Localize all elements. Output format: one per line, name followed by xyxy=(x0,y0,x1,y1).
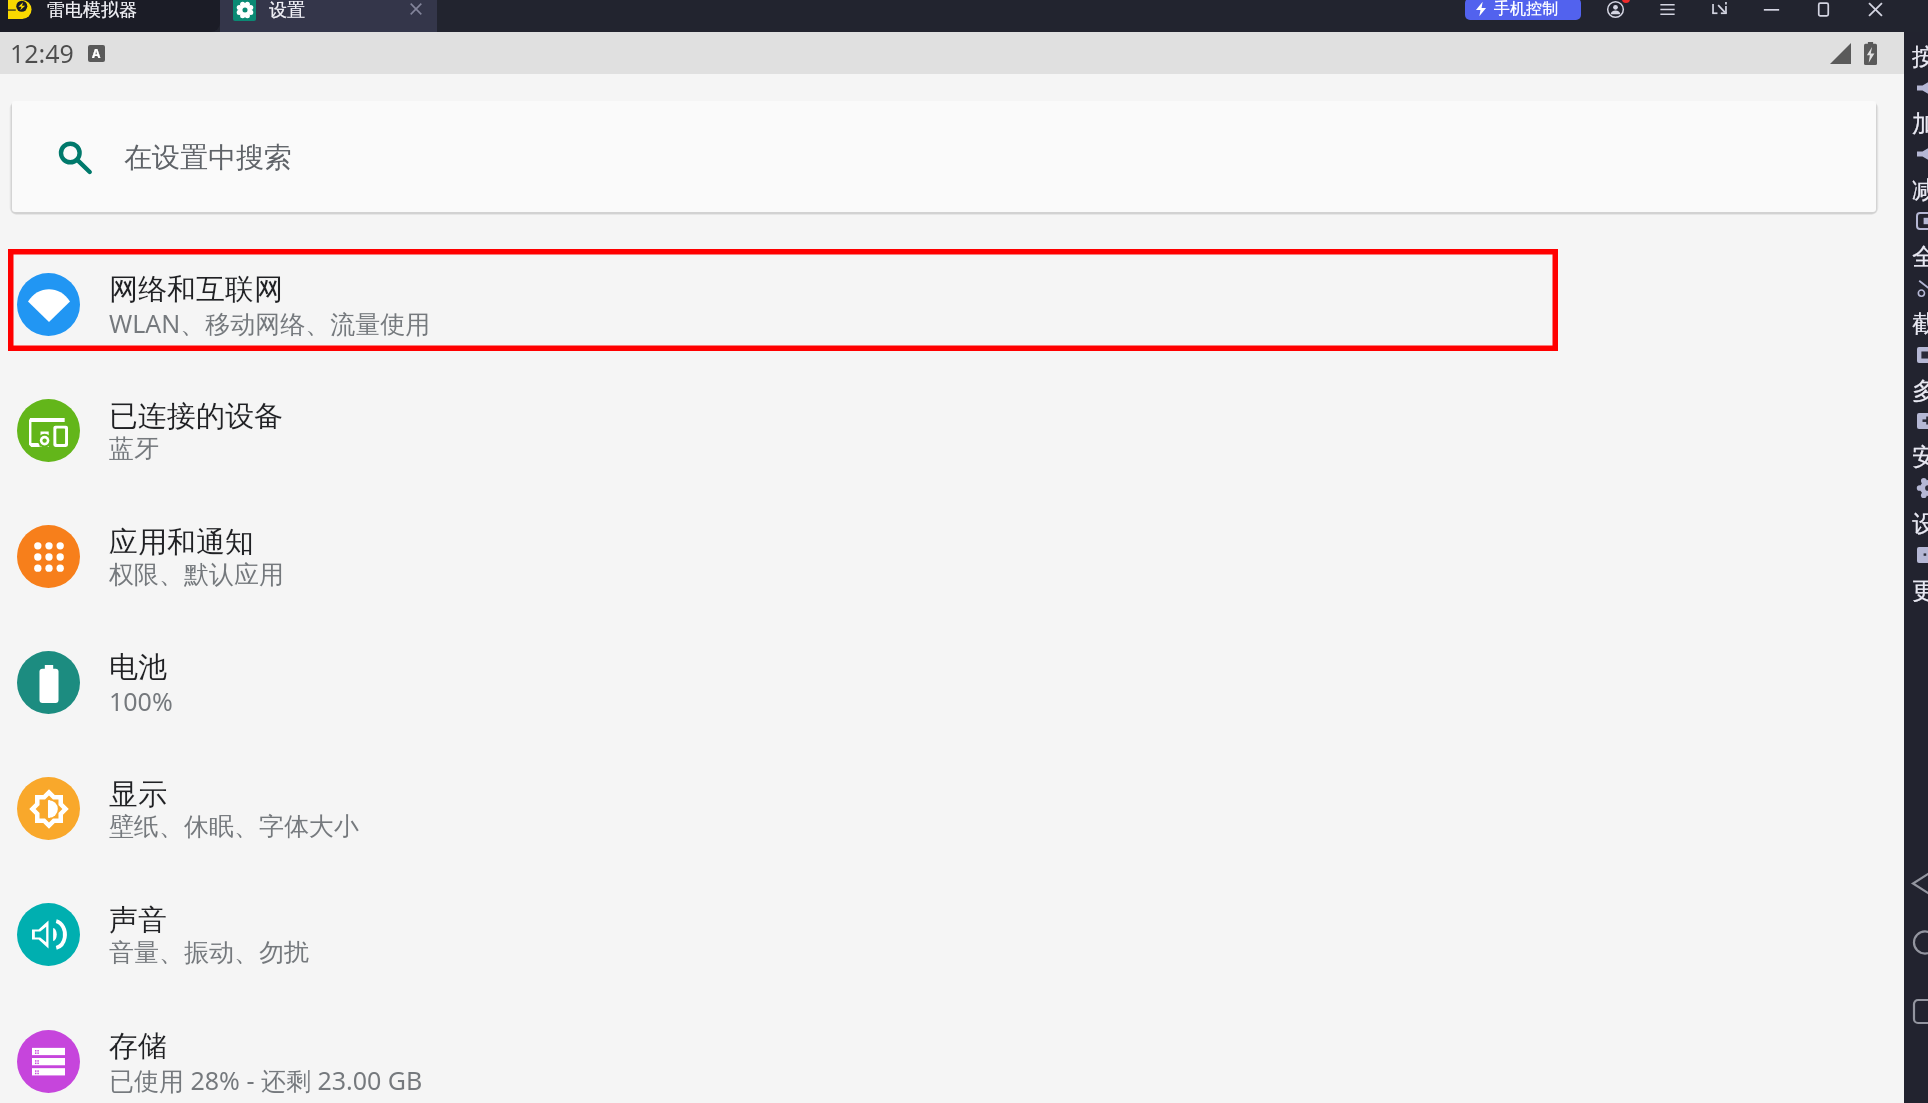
button[interactable]: Tool 按 xyxy=(1904,9,1928,75)
button[interactable]: Tool 多 xyxy=(1904,343,1928,409)
staticText: 显示 xyxy=(109,776,167,813)
button[interactable]: Minimize xyxy=(1756,0,1787,25)
staticText: 设置 xyxy=(269,0,305,22)
staticText: 减 xyxy=(1912,175,1928,205)
staticText: 已连接的设备 xyxy=(109,398,283,435)
button[interactable]: Close xyxy=(1860,0,1891,25)
button[interactable]: Fullscreen xyxy=(1704,0,1735,25)
staticText: 设 xyxy=(1912,509,1928,539)
button[interactable]: 网络和互联网 xyxy=(0,241,1904,367)
button[interactable]: 设置 xyxy=(220,0,437,32)
button[interactable]: Home xyxy=(1904,928,1928,978)
staticText: 应用和通知 xyxy=(109,524,254,561)
staticText: 全 xyxy=(1912,242,1928,272)
button[interactable]: 手机控制 xyxy=(1465,0,1581,20)
button[interactable]: Tool 更 xyxy=(1904,543,1928,609)
button[interactable]: Tool 加 xyxy=(1904,76,1928,142)
staticText: 加 xyxy=(1912,109,1928,139)
staticText: 更 xyxy=(1912,576,1928,606)
button[interactable]: 应用和通知 xyxy=(0,493,1904,619)
staticText: 雷电模拟器 xyxy=(47,0,137,22)
button[interactable]: 雷电模拟器 xyxy=(0,0,220,32)
button[interactable]: Menu xyxy=(1652,0,1683,25)
staticText: 网络和互联网 xyxy=(109,271,283,308)
staticText: 按 xyxy=(1912,42,1928,72)
button[interactable]: 存储 xyxy=(0,998,1904,1103)
staticText: 权限、默认应用 xyxy=(109,559,284,590)
button[interactable]: Tool 减 xyxy=(1904,142,1928,208)
staticText: 安 xyxy=(1912,442,1928,472)
button[interactable]: 已连接的设备 xyxy=(0,367,1904,493)
button[interactable]: Recents xyxy=(1904,998,1928,1048)
button[interactable]: Account xyxy=(1600,0,1631,25)
staticText: 手机控制 xyxy=(1494,0,1558,19)
button[interactable]: Back xyxy=(1904,868,1928,918)
button[interactable]: Tool 设 xyxy=(1904,476,1928,542)
staticText: 蓝牙 xyxy=(109,433,159,464)
staticText: 在设置中搜索 xyxy=(124,140,292,175)
staticText: 声音 xyxy=(109,902,167,939)
button[interactable]: Maximize xyxy=(1808,0,1839,25)
staticText: 已使用 28% - 还剩 23.00 GB xyxy=(109,1063,423,1097)
staticText: 壁纸、休眠、字体大小 xyxy=(109,811,359,842)
staticText: WLAN、移动网络、流量使用 xyxy=(109,306,431,340)
staticText: 截 xyxy=(1912,309,1928,339)
staticText: A xyxy=(92,45,101,61)
button[interactable]: 电池 xyxy=(0,619,1904,745)
button[interactable]: 声音 xyxy=(0,871,1904,997)
staticText: 12:49 xyxy=(10,36,74,70)
button[interactable]: Close tab xyxy=(401,0,431,24)
staticText: 100% xyxy=(109,684,173,718)
button[interactable]: Tool 安 xyxy=(1904,409,1928,475)
button[interactable]: Tool 全 xyxy=(1904,209,1928,275)
button[interactable]: Tool 截 xyxy=(1904,276,1928,342)
staticText: 多 xyxy=(1912,376,1928,406)
staticText: 存储 xyxy=(109,1028,167,1065)
button[interactable]: 显示 xyxy=(0,745,1904,871)
button[interactable]: 在设置中搜索 xyxy=(12,101,1876,212)
staticText: 电池 xyxy=(109,649,167,686)
staticText: 音量、振动、勿扰 xyxy=(109,937,309,968)
